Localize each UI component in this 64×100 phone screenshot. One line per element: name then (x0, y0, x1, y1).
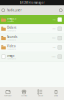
button[interactable]: Delete (48, 88, 64, 99)
button[interactable]: Images (0, 15, 64, 24)
staticText: 1 kb (52, 46, 55, 48)
button[interactable]: Video (0, 43, 64, 52)
staticText: Delete (54, 95, 58, 97)
staticText: 10 kb (51, 56, 55, 58)
staticText: 1265 items (7, 21, 14, 22)
button[interactable]: New Folder (0, 88, 16, 99)
staticText: 3 kb (52, 28, 55, 30)
button[interactable]: Favorites (16, 88, 32, 99)
button[interactable]: Image (0, 52, 64, 61)
staticText: Images (7, 17, 16, 20)
staticText: Select All (37, 95, 42, 97)
staticText: New Folder (4, 95, 12, 97)
button[interactable]: Forward (57, 5, 64, 15)
staticText: 1 kb (52, 19, 55, 21)
staticText: 12 Nov 2013 (7, 58, 16, 59)
staticText: Video (7, 44, 16, 48)
staticText: AKOM Filemanager (19, 1, 44, 4)
staticText: Orders (7, 26, 16, 29)
staticText: 12 Nov 2013 (7, 48, 16, 50)
staticText: Sounds (7, 35, 17, 39)
staticText: Image (7, 54, 15, 57)
staticText: Favorites (20, 95, 27, 97)
button[interactable]: Refresh (0, 5, 6, 15)
staticText: 2.9 kb (51, 37, 55, 39)
button[interactable]: Select All (32, 88, 48, 99)
staticText: /sudo_user (6, 8, 21, 12)
button[interactable]: Sounds (0, 34, 64, 43)
button[interactable]: Orders (0, 24, 64, 34)
staticText: 12 Nov 2013 (7, 30, 16, 32)
